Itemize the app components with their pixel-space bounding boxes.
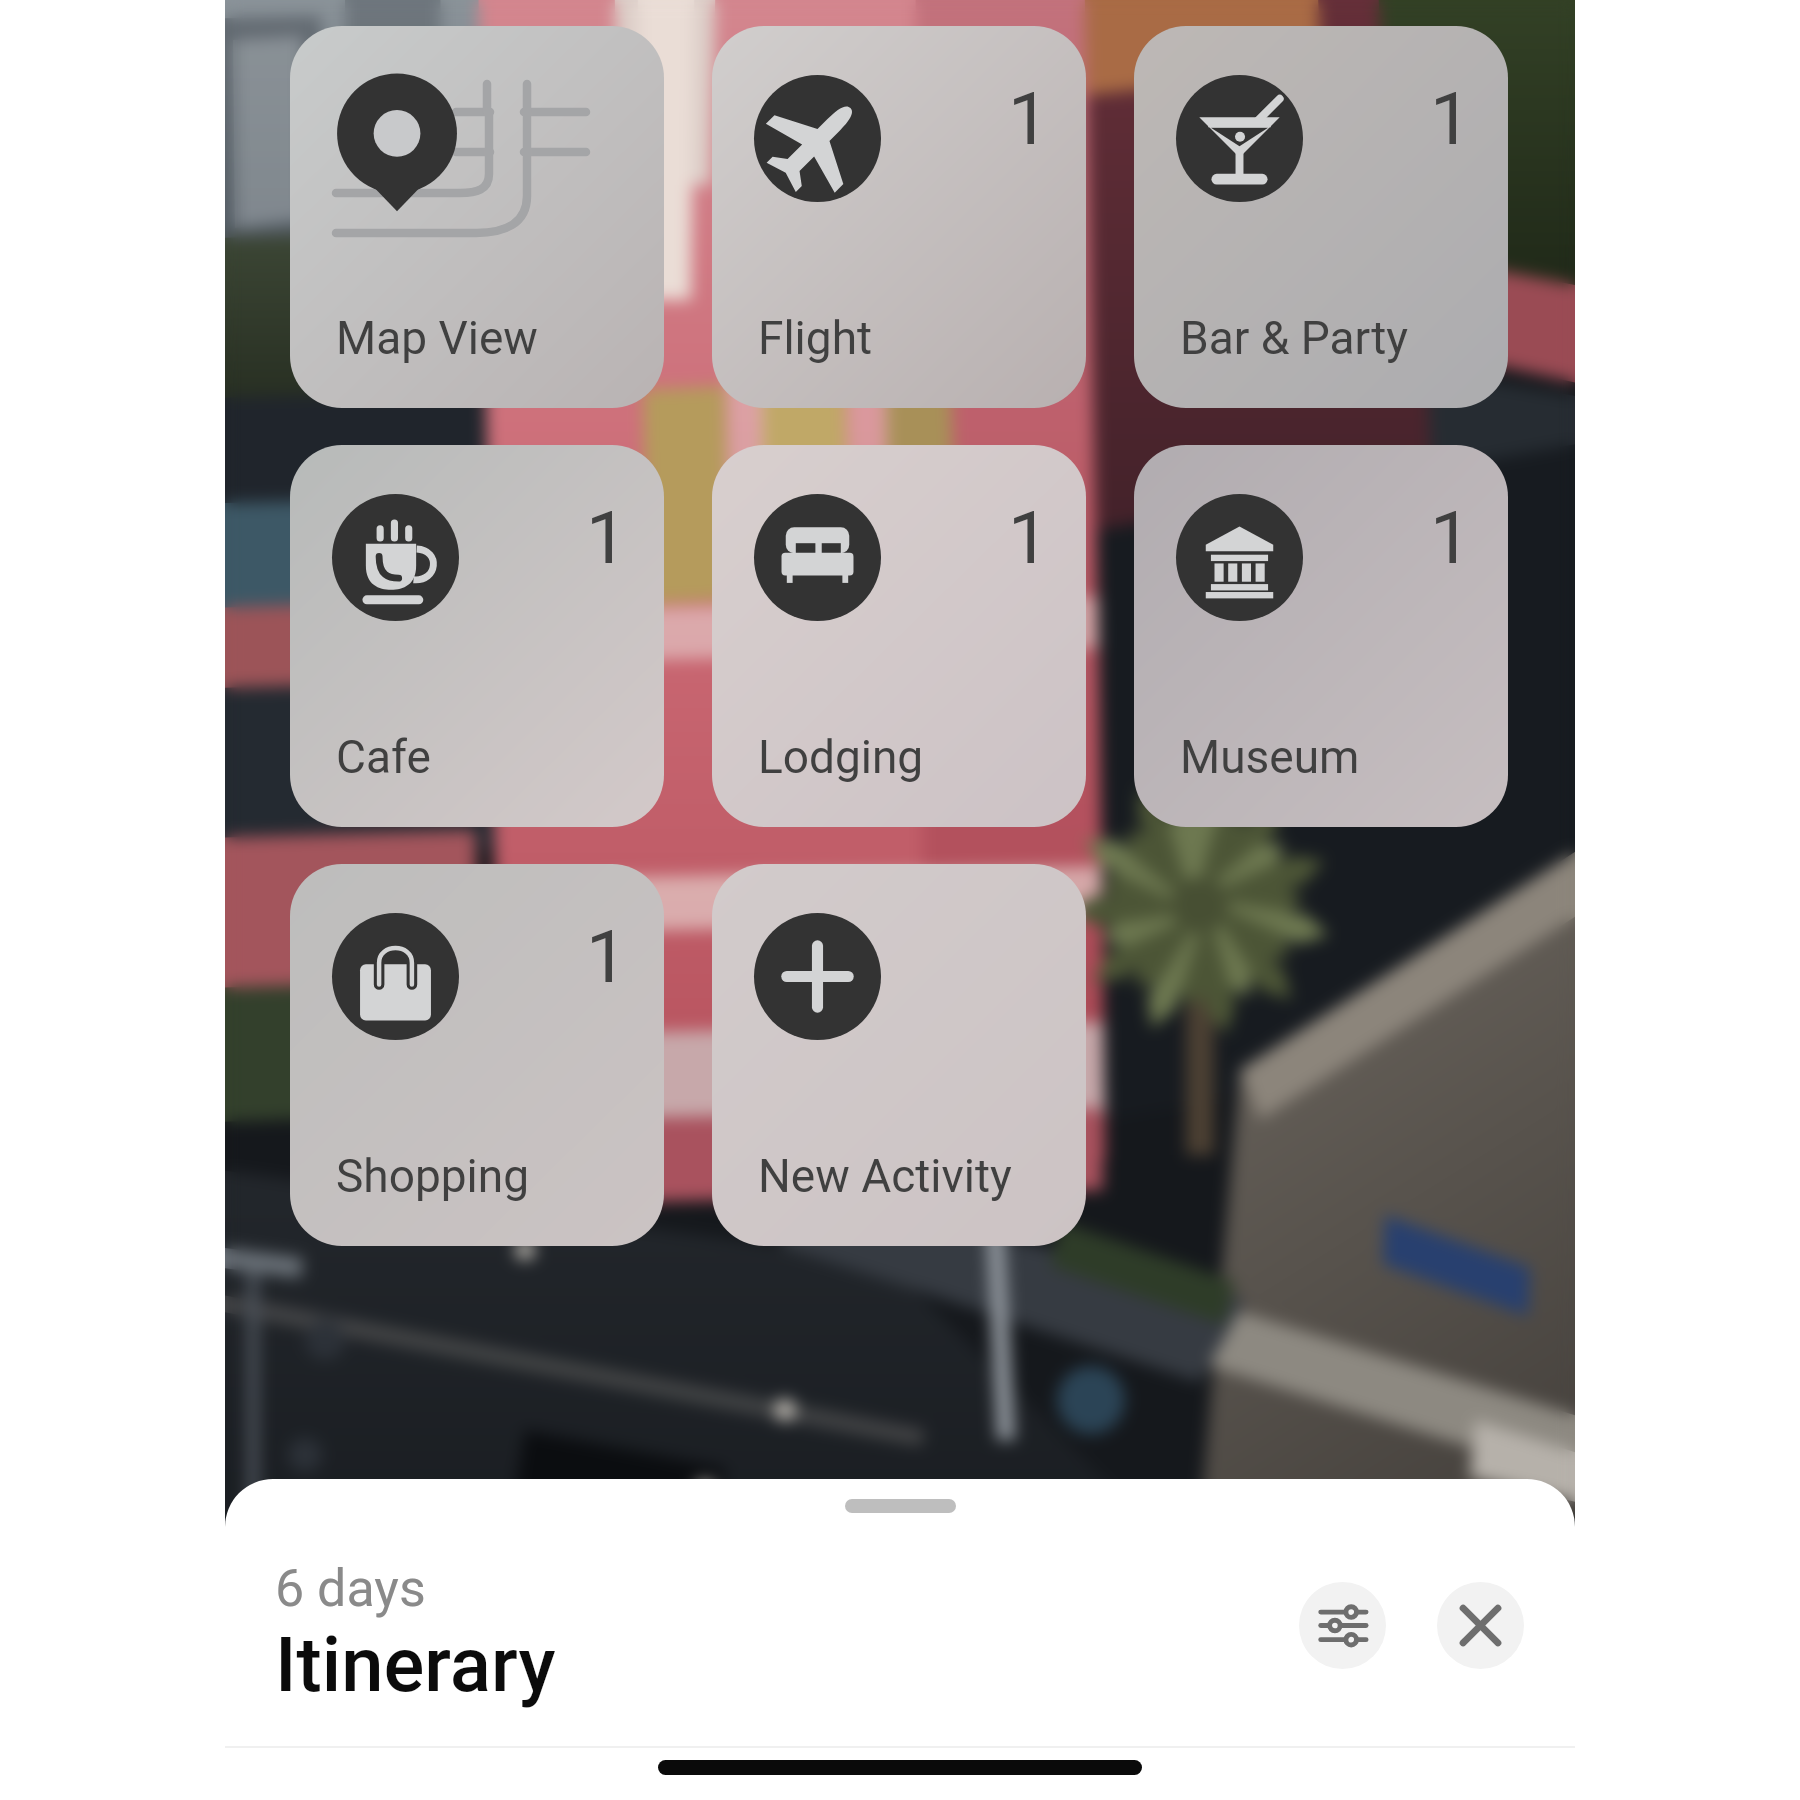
button[interactable]: 1 — [712, 26, 1086, 408]
staticText: 1 — [1429, 495, 1471, 581]
button[interactable]: New Activity — [712, 864, 1086, 1246]
staticText: 1 — [1007, 495, 1049, 581]
button[interactable]: Close — [1437, 1582, 1524, 1669]
staticText: Flight — [758, 311, 873, 365]
button[interactable]: 1 — [290, 864, 664, 1246]
staticText: Map View — [336, 311, 538, 365]
button[interactable]: Map View — [290, 26, 664, 408]
staticText: Cafe — [336, 730, 431, 784]
staticText: 1 — [585, 495, 627, 581]
button[interactable]: 1 — [290, 445, 664, 827]
staticText: Lodging — [758, 730, 924, 784]
staticText: Museum — [1180, 730, 1360, 784]
button[interactable]: 1 — [1134, 26, 1508, 408]
staticText: Bar & Party — [1180, 311, 1409, 365]
staticText: Itinerary — [275, 1620, 556, 1709]
button[interactable]: 1 — [1134, 445, 1508, 827]
staticText: New Activity — [758, 1149, 1012, 1203]
button[interactable]: 1 — [712, 445, 1086, 827]
staticText: 1 — [1007, 76, 1049, 162]
staticText: Shopping — [336, 1149, 529, 1203]
button[interactable]: Filter — [1299, 1582, 1386, 1669]
staticText: 6 days — [275, 1558, 426, 1619]
staticText: 1 — [1429, 76, 1471, 162]
staticText: 1 — [585, 914, 627, 1000]
